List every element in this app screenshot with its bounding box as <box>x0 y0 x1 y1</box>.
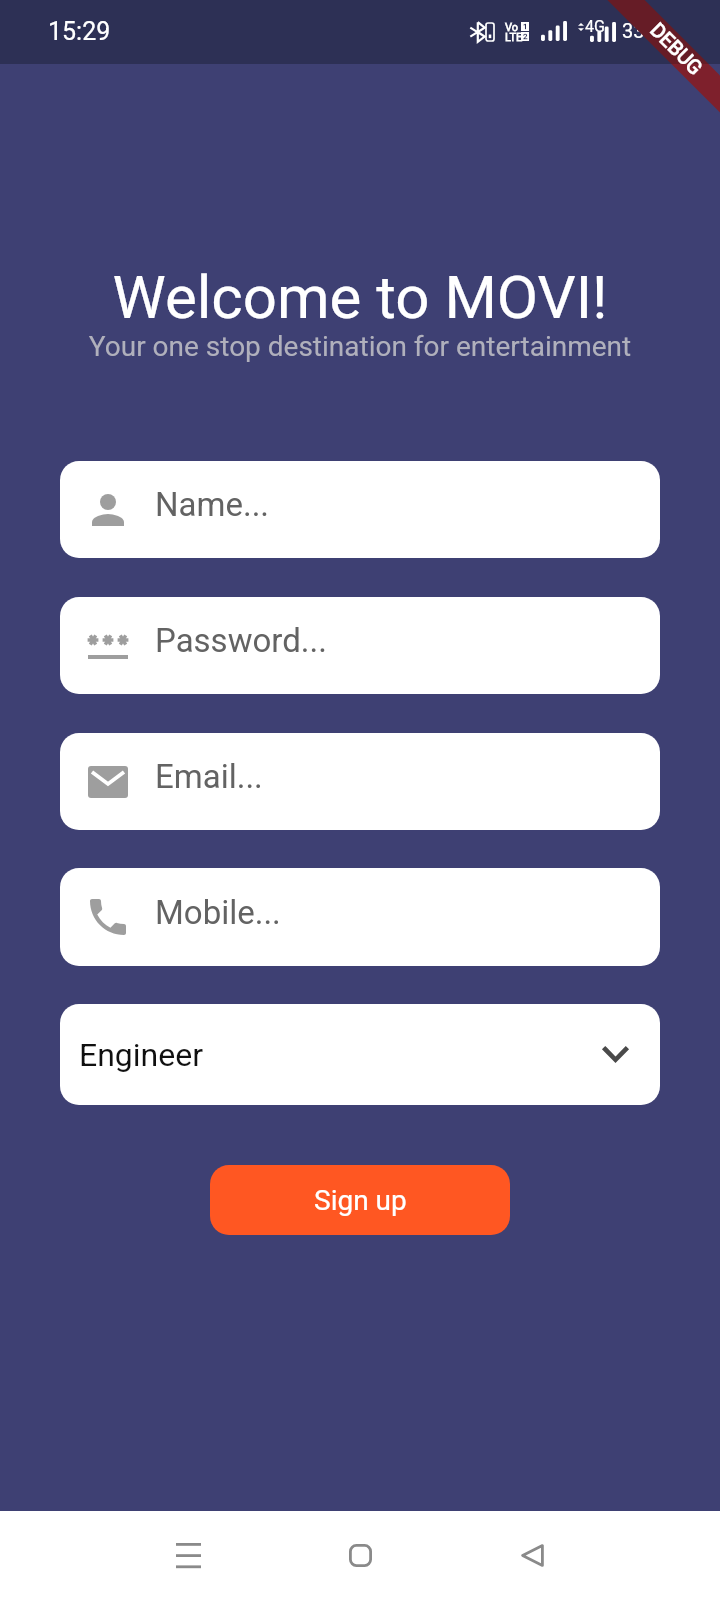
button[interactable]: Home <box>321 1516 399 1594</box>
button[interactable]: Sign up <box>210 1165 510 1235</box>
button[interactable]: Password... <box>60 597 660 694</box>
staticText: 2 <box>523 32 528 41</box>
staticText: Email... <box>155 757 263 796</box>
staticText: 4G <box>585 17 605 36</box>
staticText: 15:29 <box>48 17 111 46</box>
staticText: 33% <box>622 19 660 42</box>
staticText: Mobile... <box>155 893 281 932</box>
button[interactable]: Back <box>493 1516 571 1594</box>
staticText: Vo <box>505 21 519 34</box>
button[interactable]: Recent apps <box>149 1516 227 1594</box>
staticText: 1 <box>523 22 528 31</box>
staticText: LTE <box>505 31 523 44</box>
staticText: Password... <box>155 621 327 660</box>
staticText: DEBUG <box>646 18 708 79</box>
button[interactable]: Engineer <box>60 1004 660 1105</box>
staticText: Sign up <box>314 1184 407 1217</box>
staticText: Welcome to MOVI! <box>0 262 720 332</box>
button[interactable]: Email... <box>60 733 660 830</box>
staticText: Name... <box>155 485 270 524</box>
staticText: Engineer <box>79 1036 204 1074</box>
button[interactable]: Mobile... <box>60 868 660 966</box>
button[interactable]: Name... <box>60 461 660 558</box>
staticText: Your one stop destination for entertainm… <box>0 330 720 363</box>
